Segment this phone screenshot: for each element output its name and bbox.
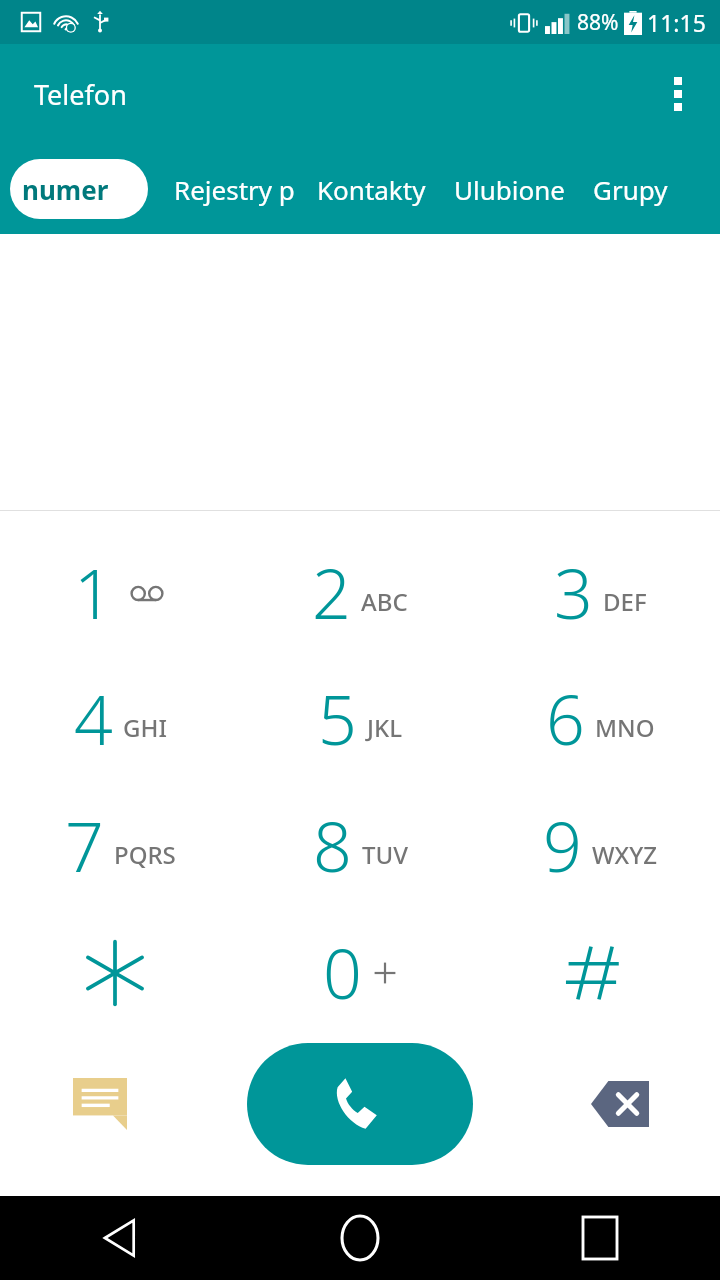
button[interactable]: Recent apps [480, 1196, 720, 1280]
staticText: 5 [318, 672, 357, 765]
staticText: 0 [323, 926, 362, 1019]
staticText: numer [22, 172, 109, 207]
button[interactable]: Ulubione [454, 172, 565, 207]
button[interactable]: 2 [240, 529, 480, 655]
button[interactable]: 0 [240, 909, 480, 1036]
staticText: ABC [361, 585, 408, 618]
staticText: DEF [603, 585, 647, 618]
staticText: 1 [74, 546, 113, 639]
button[interactable]: Backspace [582, 1066, 658, 1142]
button[interactable]: Back [0, 1196, 240, 1280]
staticText: PQRS [114, 838, 176, 871]
staticText: 11:15 [647, 7, 706, 38]
button[interactable] [480, 909, 720, 1036]
button[interactable]: Send message [62, 1066, 138, 1142]
button[interactable]: Home [240, 1196, 480, 1280]
staticText: WXYZ [592, 838, 658, 871]
button[interactable]: 5 [240, 655, 480, 782]
button[interactable]: Call [247, 1043, 473, 1165]
button[interactable]: 9 [480, 782, 720, 909]
button[interactable]: 4 [0, 655, 240, 782]
staticText: 4 [74, 672, 113, 765]
staticText: MNO [595, 711, 655, 744]
staticText: JKL [367, 711, 402, 744]
button[interactable]: numer [10, 159, 148, 219]
button[interactable]: 6 [480, 655, 720, 782]
staticText: 9 [543, 799, 582, 892]
staticText: 8 [313, 799, 352, 892]
staticText: 3 [554, 546, 593, 639]
button[interactable]: Grupy [593, 172, 668, 207]
button[interactable]: 8 [240, 782, 480, 909]
staticText: 6 [546, 672, 585, 765]
staticText: TUV [362, 838, 408, 871]
staticText: 88% [577, 8, 619, 37]
button[interactable]: 7 [0, 782, 240, 909]
staticText: 7 [65, 799, 104, 892]
button[interactable]: More options [650, 66, 706, 122]
button[interactable]: Rejestry p [174, 172, 295, 207]
staticText: GHI [123, 711, 167, 744]
button[interactable]: 1 [0, 529, 240, 655]
staticText: 2 [312, 546, 351, 639]
button[interactable]: Kontakty [317, 172, 426, 207]
staticText: Telefon [34, 76, 127, 113]
button[interactable] [0, 909, 240, 1036]
button[interactable]: 3 [480, 529, 720, 655]
